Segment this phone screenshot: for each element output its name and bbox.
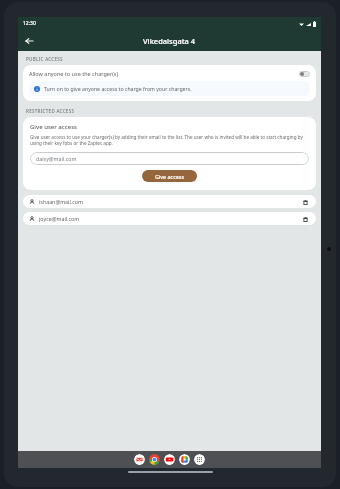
staticText: daisy@mail.com [36, 155, 77, 162]
button[interactable]: All apps [194, 454, 205, 465]
button[interactable]: Gmail [134, 454, 145, 465]
staticText: joyce@mail.com [39, 215, 300, 222]
staticText: Give user access to use your charger(s) … [30, 134, 309, 147]
staticText: 12:30 [23, 20, 36, 27]
button[interactable]: YouTube [164, 454, 175, 465]
staticText: RESTRICTED ACCESS [26, 108, 75, 114]
staticText: PUBLIC ACCESS [26, 56, 63, 62]
button[interactable]: Give access [142, 170, 197, 182]
staticText: Vikedalsgata 4 [143, 36, 196, 46]
staticText: Give access [155, 173, 184, 180]
staticText: ishaan@mail.com [39, 198, 300, 205]
button[interactable]: Allow anyone to use the charger(s) [29, 70, 310, 77]
button[interactable]: Photos [179, 454, 190, 465]
button[interactable]: Chrome [149, 454, 160, 465]
staticText: Turn on to give anyone access to charge … [44, 85, 192, 92]
staticText: Allow anyone to use the charger(s) [29, 70, 299, 77]
button[interactable]: Back [21, 33, 37, 49]
button[interactable]: Delete [300, 214, 310, 224]
staticText: Give user access [30, 123, 77, 131]
button[interactable]: daisy@mail.com [30, 152, 309, 165]
button[interactable]: joyce@mail.com [23, 212, 316, 225]
button[interactable]: ishaan@mail.com [23, 195, 316, 208]
button[interactable]: Delete [300, 197, 310, 207]
